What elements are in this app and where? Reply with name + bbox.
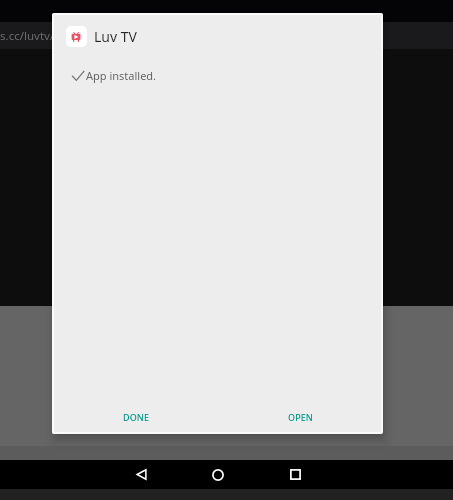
button[interactable]: Back (101, 460, 179, 489)
button[interactable]: Home (179, 460, 257, 489)
button[interactable]: OPEN (276, 395, 325, 434)
staticText: ps.cc/luvtv/ (0, 28, 55, 44)
button[interactable]: DONE (111, 395, 162, 434)
staticText: DONE (123, 411, 150, 423)
staticText: OPEN (288, 411, 313, 423)
staticText: Luv TV (94, 27, 137, 46)
staticText: App installed. (86, 68, 157, 83)
button[interactable]: Recents (256, 460, 334, 489)
